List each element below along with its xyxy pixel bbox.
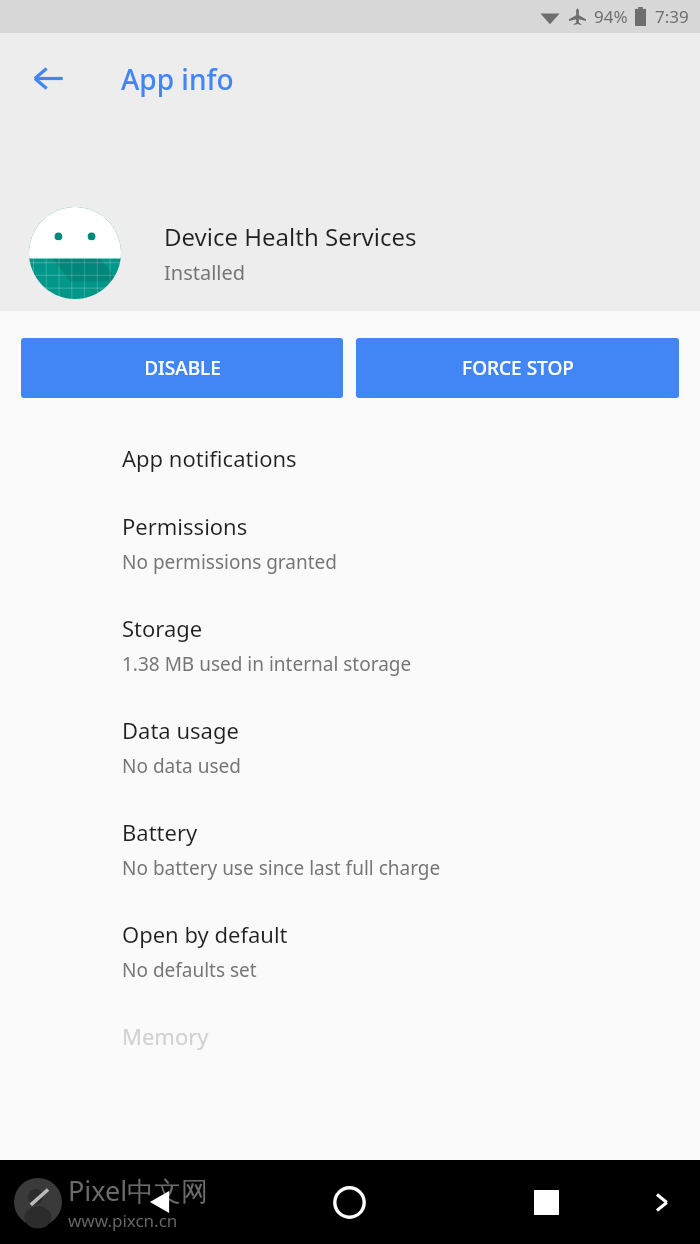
button[interactable]: Data usage [0,696,700,798]
staticText: No data used [122,753,241,779]
button[interactable]: Home [317,1170,381,1234]
button[interactable]: DISABLE [21,338,343,398]
staticText: No permissions granted [122,549,337,575]
staticText: Memory [122,1021,209,1051]
button[interactable]: Back [128,1170,192,1234]
staticText: DISABLE [144,355,221,381]
button[interactable]: More [633,1174,689,1230]
button[interactable]: Storage [0,594,700,696]
button[interactable]: Recent apps [514,1170,578,1234]
staticText: www.pixcn.cn [68,1209,178,1232]
staticText: Permissions [122,511,248,541]
staticText: 1.38 MB used in internal storage [122,651,412,677]
staticText: App notifications [122,443,297,473]
staticText: Storage [122,613,203,643]
staticText: Device Health Services [164,220,417,253]
staticText: 94% [594,5,628,28]
staticText: Installed [164,259,246,286]
staticText: App info [121,60,234,98]
button[interactable]: Memory [0,1002,700,1070]
button[interactable]: Open by default [0,900,700,1002]
staticText: Open by default [122,919,288,949]
staticText: No defaults set [122,957,257,983]
staticText: Pixel中文网 [68,1172,209,1209]
button[interactable]: FORCE STOP [356,338,679,398]
button[interactable]: Permissions [0,492,700,594]
button[interactable]: Battery [0,798,700,900]
staticText: FORCE STOP [462,355,574,381]
staticText: No battery use since last full charge [122,855,441,881]
button[interactable]: Back [18,48,78,108]
button[interactable]: App notifications [0,424,700,492]
staticText: Battery [122,817,198,847]
staticText: 7:39 [655,5,689,28]
staticText: Data usage [122,715,239,745]
